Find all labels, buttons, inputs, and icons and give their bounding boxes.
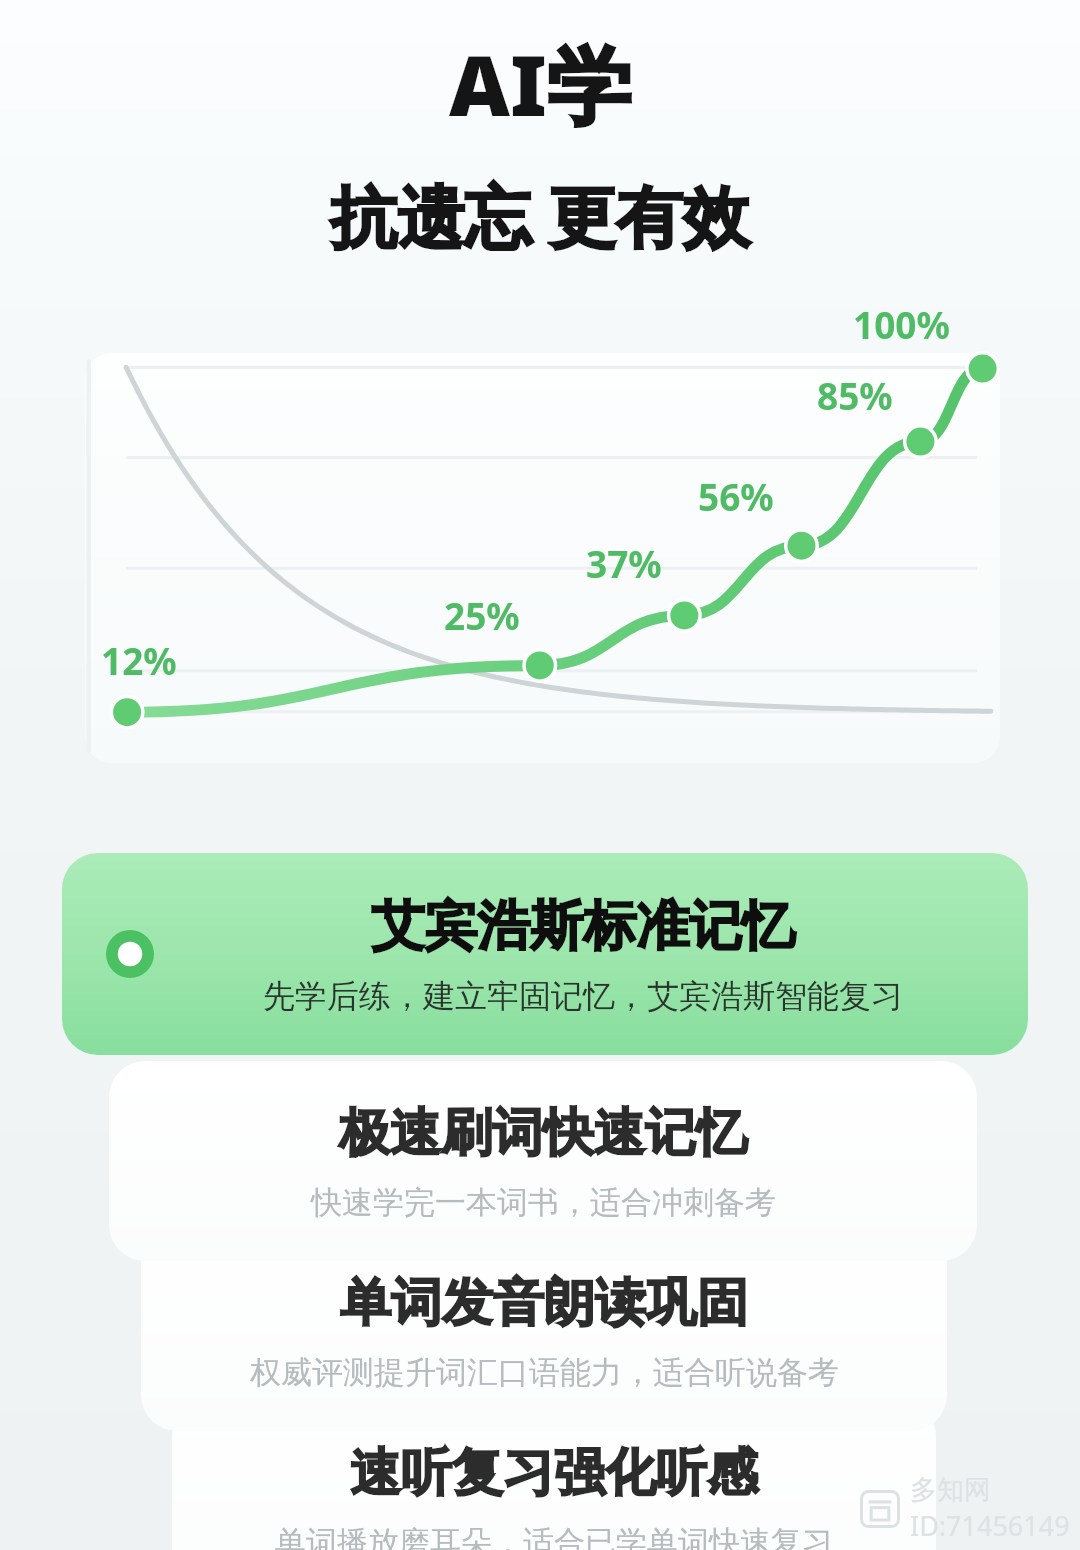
button[interactable]: 极速刷词快速记忆 [109,1061,977,1261]
staticText: 艾宾浩斯标准记忆 [371,893,795,960]
staticText: 速听复习强化听感 [350,1441,758,1505]
staticText: 12% [101,635,177,685]
staticText: 100% [853,299,950,349]
staticText: 快速学完一本词书，适合冲刺备考 [311,1183,776,1222]
staticText: 多知网 [910,1473,991,1507]
staticText: 先学后练，建立牢固记忆，艾宾浩斯智能复习 [263,976,903,1016]
staticText: 权威评测提升词汇口语能力，适合听说备考 [250,1353,839,1392]
button[interactable]: 速听复习强化听感 [172,1401,936,1550]
staticText: 极速刷词快速记忆 [339,1101,747,1165]
staticText: 25% [444,590,520,640]
staticText: 56% [698,471,774,521]
other: 选中 艾宾浩斯标准记忆 [106,930,154,978]
button[interactable]: 单词发音朗读巩固 [141,1231,947,1431]
staticText: 单词发音朗读巩固 [340,1271,748,1335]
staticText: ID:71456149 [910,1507,1070,1544]
staticText: 37% [586,538,662,588]
staticText: 85% [817,370,893,420]
staticText: 抗遗忘 更有效 [330,169,750,261]
staticText: AI学 [449,26,631,141]
staticText: 单词播放磨耳朵，适合已学单词快速复习 [275,1523,833,1550]
button[interactable]: 选中 艾宾浩斯标准记忆 [62,853,1028,1055]
